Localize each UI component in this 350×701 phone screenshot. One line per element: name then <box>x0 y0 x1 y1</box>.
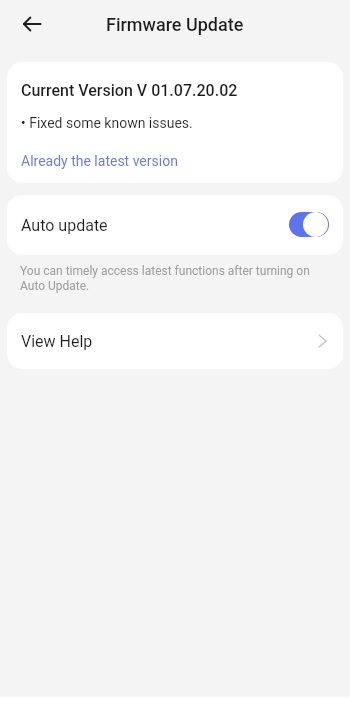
staticText: View Help <box>21 332 93 351</box>
staticText: • Fixed some known issues. <box>21 115 193 131</box>
staticText: You can timely access latest functions a… <box>20 264 326 293</box>
button[interactable]: Already the latest version <box>21 153 178 169</box>
staticText: Auto update <box>21 216 108 235</box>
button[interactable]: Auto update <box>289 212 329 237</box>
staticText: Current Version V 01.07.20.02 <box>21 81 238 100</box>
staticText: Firmware Update <box>106 14 244 35</box>
button[interactable]: Auto update <box>7 195 343 255</box>
button[interactable]: Back <box>18 10 46 38</box>
button[interactable]: View Help <box>7 313 343 369</box>
